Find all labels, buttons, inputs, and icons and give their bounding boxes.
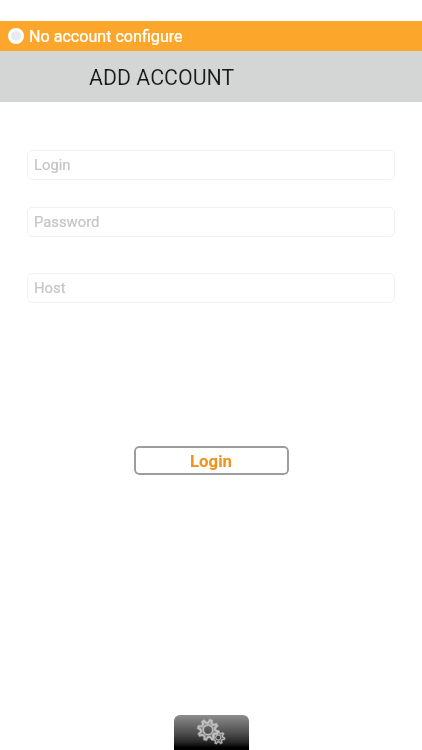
staticText: Password	[34, 213, 100, 230]
staticText: Login	[34, 156, 71, 173]
button[interactable]: Login	[134, 446, 289, 475]
staticText: ADD ACCOUNT	[89, 65, 235, 90]
button[interactable]: Password	[27, 207, 395, 237]
button[interactable]: Settings	[174, 715, 249, 750]
button[interactable]: Login	[27, 150, 395, 180]
staticText: Login	[190, 451, 233, 471]
staticText: No account configure	[29, 27, 183, 46]
staticText: Host	[34, 279, 66, 296]
button[interactable]: No account configure	[0, 21, 422, 51]
button[interactable]: Host	[27, 273, 395, 303]
